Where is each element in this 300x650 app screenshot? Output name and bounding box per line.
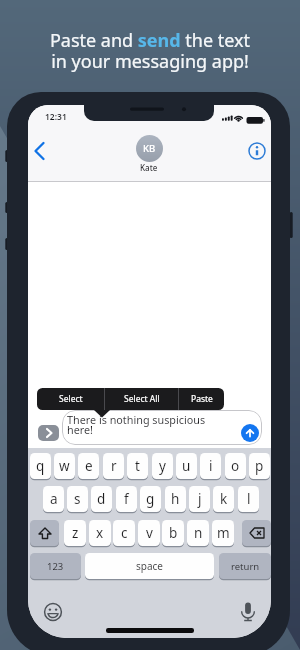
staticText: z: [72, 524, 79, 542]
staticText: w: [59, 457, 70, 475]
button[interactable]: s: [67, 486, 88, 512]
button[interactable]: l: [238, 486, 259, 512]
staticText: 12:31: [45, 111, 67, 123]
button[interactable]: m: [212, 520, 234, 546]
staticText: s: [74, 490, 81, 508]
staticText: There is nothing suspicious here!: [67, 412, 252, 437]
staticText: d: [97, 490, 106, 508]
staticText: Select: [59, 393, 83, 405]
button[interactable]: o: [225, 453, 246, 479]
button[interactable]: space: [85, 553, 214, 579]
staticText: m: [217, 524, 230, 542]
staticText: g: [146, 490, 155, 508]
button[interactable]: q: [30, 453, 51, 479]
button[interactable]: w: [54, 453, 75, 479]
button[interactable]: k: [213, 486, 234, 512]
button[interactable]: Paste: [179, 388, 224, 410]
staticText: f: [124, 490, 129, 508]
button[interactable]: t: [127, 453, 148, 479]
button[interactable]: g: [140, 486, 161, 512]
staticText: KB: [143, 142, 156, 155]
button[interactable]: [30, 138, 50, 164]
staticText: u: [182, 457, 191, 475]
staticText: t: [135, 457, 140, 475]
button[interactable]: f: [116, 486, 137, 512]
button[interactable]: [42, 601, 64, 623]
staticText: k: [220, 490, 228, 508]
button[interactable]: z: [64, 520, 86, 546]
staticText: j: [198, 490, 202, 508]
staticText: n: [194, 524, 203, 542]
staticText: r: [111, 457, 117, 475]
button[interactable]: h: [165, 486, 186, 512]
button[interactable]: r: [103, 453, 124, 479]
button[interactable]: [247, 141, 267, 161]
button[interactable]: y: [152, 453, 173, 479]
button[interactable]: e: [78, 453, 99, 479]
button[interactable]: [237, 601, 258, 622]
button[interactable]: n: [187, 520, 209, 546]
button[interactable]: [30, 520, 59, 546]
staticText: y: [159, 457, 166, 475]
staticText: o: [231, 457, 240, 475]
staticText: Paste and send the text in your messagin…: [0, 28, 300, 74]
staticText: h: [171, 490, 180, 508]
staticText: 123: [47, 560, 64, 573]
staticText: q: [36, 457, 45, 475]
button[interactable]: Select All: [105, 388, 178, 410]
staticText: return: [231, 560, 260, 573]
button[interactable]: Select: [37, 388, 104, 410]
staticText: v: [146, 524, 153, 542]
staticText: Paste: [191, 393, 213, 405]
button[interactable]: x: [89, 520, 111, 546]
staticText: c: [121, 524, 128, 542]
staticText: i: [209, 457, 213, 475]
staticText: x: [96, 524, 104, 542]
button[interactable]: b: [162, 520, 184, 546]
button[interactable]: [242, 520, 271, 546]
staticText: Kate: [140, 162, 158, 173]
staticText: space: [136, 559, 163, 573]
staticText: a: [50, 490, 58, 508]
staticText: p: [255, 457, 264, 475]
staticText: Select All: [124, 393, 160, 405]
button[interactable]: i: [200, 453, 221, 479]
staticText: l: [247, 490, 251, 508]
button[interactable]: p: [249, 453, 270, 479]
button[interactable]: v: [138, 520, 160, 546]
staticText: e: [85, 457, 93, 475]
button[interactable]: 123: [30, 553, 81, 579]
button[interactable]: d: [91, 486, 112, 512]
button[interactable]: j: [189, 486, 210, 512]
staticText: b: [169, 524, 178, 542]
button[interactable]: [38, 425, 59, 441]
button[interactable]: c: [113, 520, 135, 546]
button[interactable]: a: [43, 486, 64, 512]
button[interactable]: u: [176, 453, 197, 479]
button[interactable]: [241, 424, 259, 442]
button[interactable]: return: [219, 553, 271, 579]
